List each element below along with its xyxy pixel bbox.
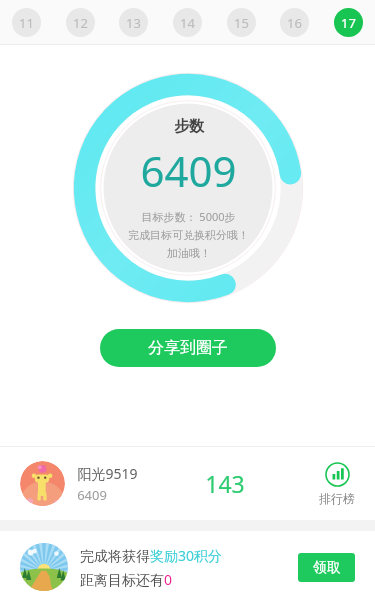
button[interactable]: 17 <box>334 8 363 37</box>
staticText: 6409 <box>77 486 107 504</box>
staticText: 16 <box>287 14 302 32</box>
staticText: 12 <box>73 14 88 32</box>
button[interactable]: 领取 <box>298 553 355 582</box>
staticText: 13 <box>126 14 141 32</box>
staticText: 143 <box>205 468 245 499</box>
staticText: 步数 <box>174 117 204 136</box>
button[interactable]: 阳光9519 <box>0 447 375 520</box>
staticText: 排行榜 <box>319 491 355 506</box>
staticText: 14 <box>180 14 195 32</box>
button[interactable]: 12 <box>66 8 95 37</box>
button[interactable]: 分享到圈子 <box>100 329 276 367</box>
staticText: 加油哦！ <box>167 246 211 260</box>
staticText: 完成将获得奖励30积分 <box>80 546 223 565</box>
staticText: 完成目标可兑换积分哦！ <box>128 228 249 242</box>
button[interactable]: 排行榜 <box>319 462 355 506</box>
button[interactable]: 14 <box>173 8 202 37</box>
button[interactable]: 13 <box>119 8 148 37</box>
staticText: 6409 <box>140 142 237 199</box>
staticText: 阳光9519 <box>77 464 138 483</box>
staticText: 距离目标还有0 <box>80 570 173 589</box>
staticText: 15 <box>234 14 249 32</box>
staticText: 分享到圈子 <box>148 338 228 358</box>
staticText: 17 <box>341 14 356 32</box>
staticText: 11 <box>19 14 34 32</box>
staticText: 目标步数： 5000步 <box>141 209 236 224</box>
button[interactable]: 11 <box>12 8 41 37</box>
staticText: 领取 <box>313 559 341 577</box>
button[interactable]: 16 <box>280 8 309 37</box>
button[interactable]: 15 <box>227 8 256 37</box>
